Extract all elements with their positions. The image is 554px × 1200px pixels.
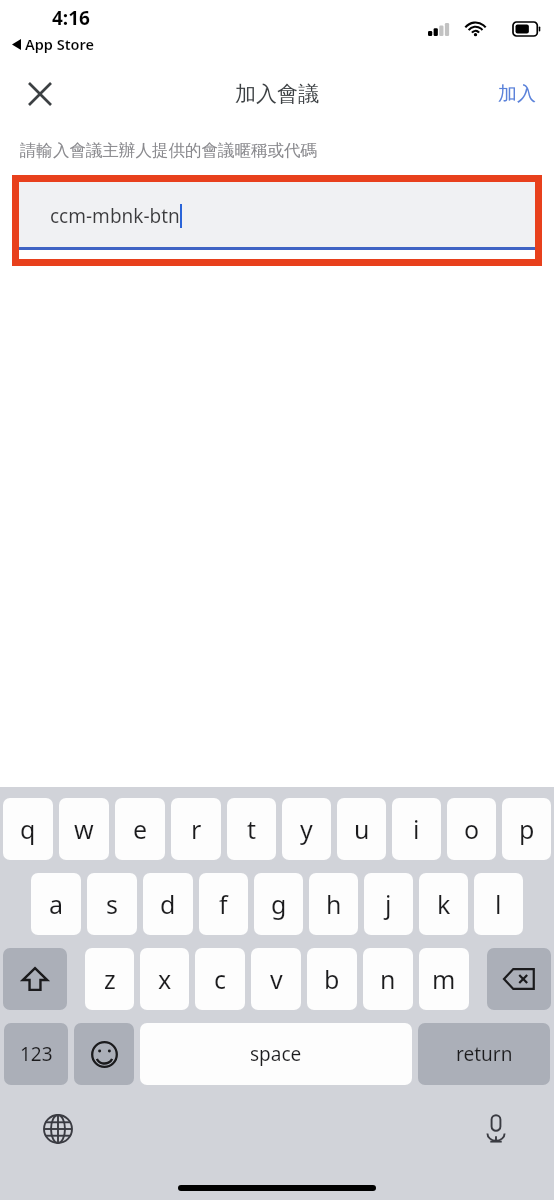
staticText: u [354, 812, 370, 846]
staticText: r [191, 812, 202, 846]
button[interactable]: b [307, 948, 357, 1010]
button[interactable]: Switch keyboard language [32, 1103, 84, 1155]
button[interactable]: j [364, 873, 413, 935]
button[interactable]: Close [14, 68, 66, 120]
button[interactable]: space [140, 1023, 412, 1085]
button[interactable]: Emoji [74, 1023, 134, 1085]
staticText: b [324, 962, 340, 996]
button[interactable]: Shift [3, 948, 67, 1010]
button[interactable]: r [171, 798, 221, 860]
staticText: z [104, 962, 116, 996]
staticText: d [160, 887, 176, 921]
staticText: t [247, 812, 257, 846]
button[interactable]: n [363, 948, 413, 1010]
button[interactable]: y [282, 798, 331, 860]
staticText: x [158, 962, 172, 996]
staticText: space [250, 1041, 302, 1067]
button[interactable]: return [418, 1023, 550, 1085]
button[interactable]: ccm-mbnk-btn [19, 182, 535, 250]
button[interactable]: k [419, 873, 468, 935]
button[interactable]: Dictation [470, 1103, 522, 1155]
staticText: App Store [25, 34, 94, 54]
button[interactable]: o [447, 798, 496, 860]
button[interactable]: a [31, 873, 81, 935]
button[interactable]: d [143, 873, 193, 935]
staticText: 123 [20, 1041, 53, 1067]
button[interactable]: q [3, 798, 53, 860]
staticText: l [495, 887, 502, 921]
button[interactable]: z [85, 948, 134, 1010]
button[interactable]: g [254, 873, 303, 935]
staticText: a [49, 887, 64, 921]
button[interactable]: t [227, 798, 276, 860]
button[interactable]: c [195, 948, 245, 1010]
staticText: s [106, 887, 118, 921]
button[interactable]: x [140, 948, 189, 1010]
button[interactable]: l [474, 873, 523, 935]
staticText: n [380, 962, 396, 996]
staticText: o [464, 812, 480, 846]
button[interactable]: i [392, 798, 441, 860]
staticText: p [519, 812, 535, 846]
button[interactable]: v [251, 948, 301, 1010]
staticText: q [20, 812, 36, 846]
staticText: v [270, 962, 283, 996]
staticText: g [271, 887, 287, 921]
button[interactable]: s [87, 873, 137, 935]
staticText: c [214, 962, 227, 996]
button[interactable]: p [502, 798, 551, 860]
button[interactable]: 加入 [480, 70, 554, 118]
button[interactable]: u [337, 798, 386, 860]
staticText: e [133, 812, 148, 846]
staticText: return [456, 1041, 513, 1067]
staticText: k [437, 887, 451, 921]
button[interactable]: Backspace [487, 948, 551, 1010]
staticText: 4:16 [52, 5, 90, 31]
button[interactable]: f [199, 873, 248, 935]
staticText: ccm-mbnk-btn [50, 203, 180, 229]
staticText: m [432, 962, 456, 996]
staticText: 加入會議 [235, 81, 319, 107]
button[interactable]: h [309, 873, 358, 935]
button[interactable]: 123 [4, 1023, 68, 1085]
staticText: w [74, 812, 94, 846]
staticText: h [326, 887, 342, 921]
button[interactable]: m [419, 948, 469, 1010]
button[interactable]: e [115, 798, 165, 860]
staticText: f [219, 887, 228, 921]
staticText: j [385, 887, 392, 921]
staticText: i [413, 812, 420, 846]
button[interactable]: w [59, 798, 109, 860]
staticText: 加入 [498, 82, 536, 106]
staticText: y [300, 812, 313, 846]
staticText: 請輸入會議主辦人提供的會議暱稱或代碼 [20, 140, 317, 161]
